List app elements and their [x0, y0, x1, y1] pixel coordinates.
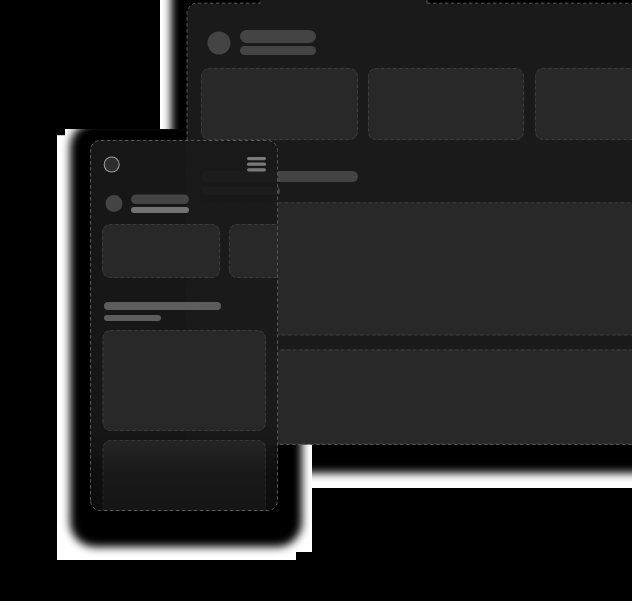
- button[interactable]: [0, 0, 632, 601]
